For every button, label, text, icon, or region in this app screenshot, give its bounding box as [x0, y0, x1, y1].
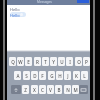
staticText: G — [50, 73, 54, 79]
button[interactable]: Z — [22, 85, 29, 94]
staticText: H — [58, 73, 62, 79]
staticText: J — [67, 73, 69, 79]
button[interactable]: A — [14, 71, 21, 80]
button[interactable]: E — [25, 57, 32, 66]
button[interactable] — [10, 12, 26, 17]
button[interactable]: V — [47, 85, 54, 94]
staticText: A — [16, 73, 20, 79]
button[interactable]: B — [55, 85, 62, 94]
button[interactable]: L — [81, 71, 88, 80]
staticText: P — [85, 59, 88, 65]
button[interactable]: S — [23, 71, 30, 80]
staticText: Z — [24, 87, 27, 93]
button[interactable]: Backspace — [79, 85, 88, 94]
staticText: Q — [11, 59, 15, 65]
staticText: L — [83, 73, 86, 79]
staticText: T — [44, 59, 47, 65]
staticText: V — [49, 87, 52, 93]
staticText: U — [60, 59, 64, 65]
staticText: R — [36, 59, 39, 65]
staticText: C — [41, 87, 44, 93]
button[interactable]: Shift — [11, 85, 21, 94]
button[interactable]: J — [64, 71, 71, 80]
button[interactable]: N — [64, 85, 71, 94]
staticText: D — [33, 73, 37, 79]
staticText: S — [25, 73, 28, 79]
button[interactable]: D — [31, 71, 38, 80]
button[interactable]: M — [72, 85, 79, 94]
staticText: W — [18, 59, 23, 65]
staticText: B — [57, 87, 61, 93]
staticText: I — [69, 59, 71, 65]
staticText: Y — [52, 59, 55, 65]
button[interactable]: Q — [9, 57, 16, 66]
button[interactable]: Y — [50, 57, 57, 66]
button[interactable] — [7, 0, 90, 5]
button[interactable]: X — [31, 85, 38, 94]
staticText: E — [27, 59, 30, 65]
staticText: Hello — [10, 13, 20, 18]
button[interactable]: P — [83, 57, 90, 66]
button[interactable]: G — [48, 71, 55, 80]
button[interactable]: I — [66, 57, 73, 66]
staticText: Hello — [10, 7, 20, 12]
button[interactable]: R — [34, 57, 41, 66]
button[interactable]: C — [39, 85, 46, 94]
button[interactable]: F — [39, 71, 46, 80]
staticText: M — [73, 87, 78, 93]
button[interactable]: T — [42, 57, 49, 66]
button[interactable]: U — [58, 57, 65, 66]
staticText: N — [66, 87, 70, 93]
button[interactable]: O — [75, 57, 82, 66]
button[interactable]: K — [73, 71, 80, 80]
button[interactable]: W — [17, 57, 24, 66]
staticText: K — [75, 73, 78, 79]
staticText: O — [77, 59, 81, 65]
staticText: X — [33, 87, 36, 93]
staticText: F — [41, 73, 44, 79]
button[interactable]: H — [56, 71, 63, 80]
staticText: Messages — [37, 0, 52, 4]
